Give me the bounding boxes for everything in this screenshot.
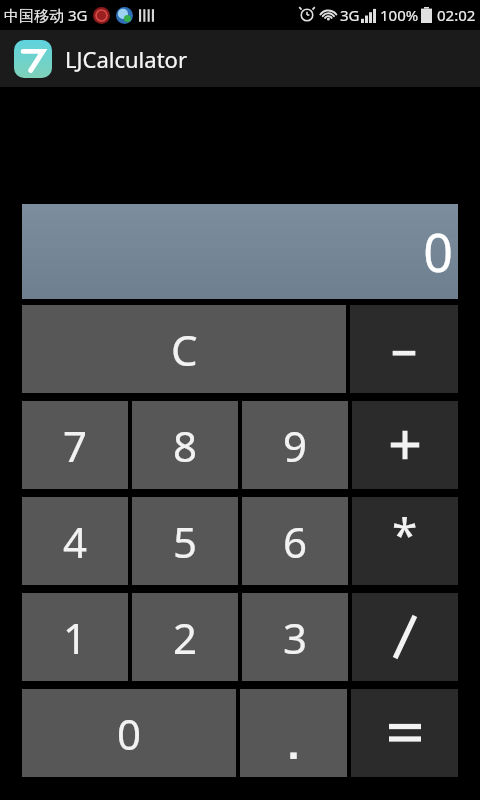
- button[interactable]: C: [22, 305, 346, 393]
- button[interactable]: 0: [22, 689, 236, 777]
- staticText: 6: [283, 513, 308, 570]
- button[interactable]: 8: [132, 401, 238, 489]
- button[interactable]: 6: [242, 497, 348, 585]
- staticText: 1: [63, 609, 88, 666]
- button[interactable]: 9: [242, 401, 348, 489]
- staticText: 0: [423, 216, 453, 287]
- button[interactable]: Decimal point: [240, 689, 347, 777]
- button[interactable]: 7: [22, 401, 128, 489]
- staticText: 中国移动 3G: [4, 5, 88, 25]
- button[interactable]: 4: [22, 497, 128, 585]
- button[interactable]: Minus: [350, 305, 458, 393]
- button[interactable]: 3: [242, 593, 348, 681]
- staticText: 0: [117, 705, 142, 762]
- staticText: 02:02: [437, 5, 476, 25]
- staticText: LJCalculator: [65, 44, 187, 74]
- button[interactable]: Multiply: [352, 497, 458, 585]
- button[interactable]: Divide: [352, 593, 458, 681]
- staticText: *: [392, 503, 418, 566]
- staticText: C: [171, 321, 198, 378]
- staticText: 100%: [380, 5, 419, 25]
- staticText: 3: [283, 609, 308, 666]
- staticText: 5: [173, 513, 198, 570]
- staticText: 9: [283, 417, 308, 474]
- button[interactable]: 2: [132, 593, 238, 681]
- staticText: 7: [63, 417, 88, 474]
- staticText: 8: [173, 417, 198, 474]
- staticText: 2: [173, 609, 198, 666]
- button[interactable]: Plus: [352, 401, 458, 489]
- staticText: 3G: [340, 5, 360, 25]
- button[interactable]: 1: [22, 593, 128, 681]
- button[interactable]: Equals: [351, 689, 458, 777]
- button[interactable]: 5: [132, 497, 238, 585]
- staticText: 4: [63, 513, 88, 570]
